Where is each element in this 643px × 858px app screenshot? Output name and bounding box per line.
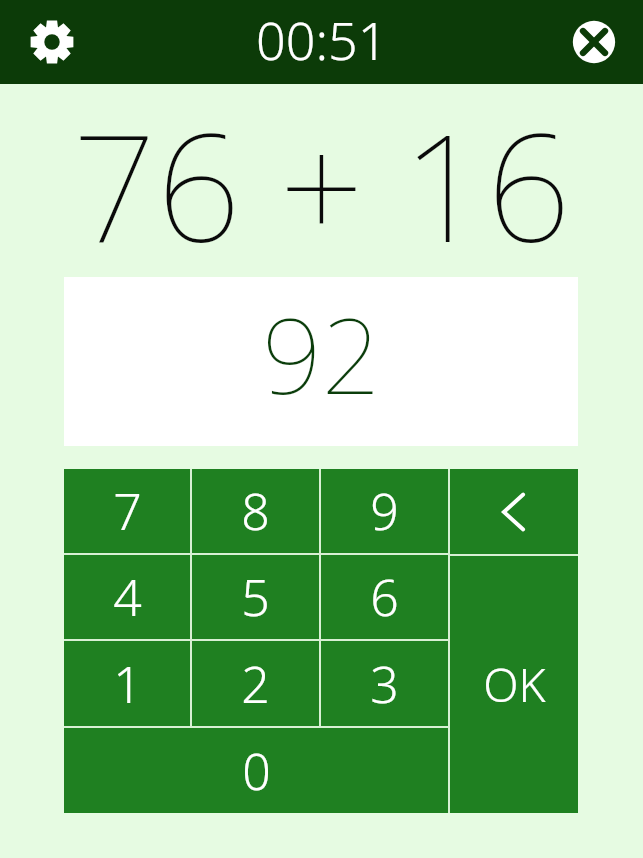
staticText: 1 xyxy=(113,650,142,718)
staticText: 6 xyxy=(370,563,399,631)
staticText: 92 xyxy=(262,283,381,425)
button[interactable]: 9 xyxy=(321,469,448,553)
button[interactable]: 7 xyxy=(64,469,190,553)
staticText: 7 xyxy=(113,477,142,545)
button[interactable]: 92 xyxy=(64,277,578,446)
button[interactable]: 0 xyxy=(64,728,448,813)
button[interactable]: Backspace xyxy=(450,469,578,554)
staticText: 0 xyxy=(242,737,271,805)
button[interactable]: 1 xyxy=(64,641,190,726)
button[interactable]: 3 xyxy=(321,641,448,726)
staticText: 9 xyxy=(370,477,399,545)
button[interactable]: 2 xyxy=(192,641,319,726)
button[interactable]: Settings xyxy=(22,12,82,72)
button[interactable]: 6 xyxy=(321,555,448,639)
button[interactable]: OK xyxy=(450,556,578,813)
button[interactable]: Close xyxy=(565,13,623,71)
staticText: 5 xyxy=(241,563,270,631)
button[interactable]: 8 xyxy=(192,469,319,553)
staticText: OK xyxy=(483,653,546,716)
button[interactable]: 5 xyxy=(192,555,319,639)
button[interactable]: 4 xyxy=(64,555,190,639)
staticText: 8 xyxy=(241,477,270,545)
staticText: 76 + 16 xyxy=(72,84,571,277)
staticText: 3 xyxy=(370,650,399,718)
staticText: 4 xyxy=(113,563,142,631)
staticText: 2 xyxy=(241,650,270,718)
staticText: 00:51 xyxy=(256,4,388,75)
